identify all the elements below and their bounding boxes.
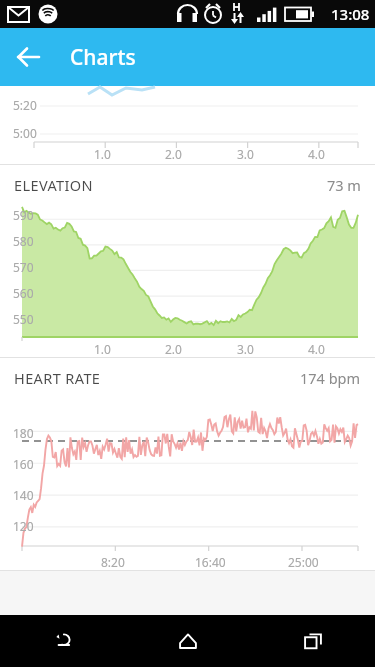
staticText: 73 m [327, 175, 361, 195]
button[interactable]: 5:20 [0, 86, 375, 164]
staticText: 1.0 [94, 146, 111, 162]
staticText: Charts [70, 43, 136, 72]
staticText: 1.0 [94, 341, 111, 357]
staticText: 25:00 [288, 554, 319, 570]
staticText: ELEVATION [14, 175, 94, 195]
staticText: 5:20 [13, 97, 37, 113]
staticText: 8:20 [101, 554, 125, 570]
button[interactable]: Home [125, 615, 250, 667]
staticText: 590 [13, 207, 34, 233]
staticText: 560 [13, 285, 34, 311]
staticText: 2.0 [165, 341, 182, 357]
staticText: 16:40 [195, 554, 226, 570]
staticText: 13:08 [331, 4, 370, 24]
staticText: 4.0 [308, 341, 325, 357]
staticText: 550 [13, 311, 34, 337]
staticText: 570 [13, 259, 34, 285]
staticText: 180 [13, 425, 34, 456]
staticText: 580 [13, 233, 34, 259]
button[interactable]: Back [0, 29, 56, 85]
staticText: 4.0 [308, 146, 325, 162]
staticText: 5:00 [13, 125, 37, 141]
staticText: 3.0 [237, 146, 254, 162]
staticText: 140 [13, 487, 34, 518]
button[interactable]: Back [0, 615, 125, 667]
staticText: 120 [13, 518, 34, 549]
staticText: HEART RATE [14, 368, 101, 388]
button[interactable]: Recent apps [250, 615, 375, 667]
button[interactable]: ELEVATION [0, 165, 375, 357]
staticText: 3.0 [237, 341, 254, 357]
staticText: 160 [13, 456, 34, 487]
button[interactable]: HEART RATE [0, 358, 375, 570]
staticText: 174 bpm [300, 368, 361, 388]
staticText: 2.0 [165, 146, 182, 162]
